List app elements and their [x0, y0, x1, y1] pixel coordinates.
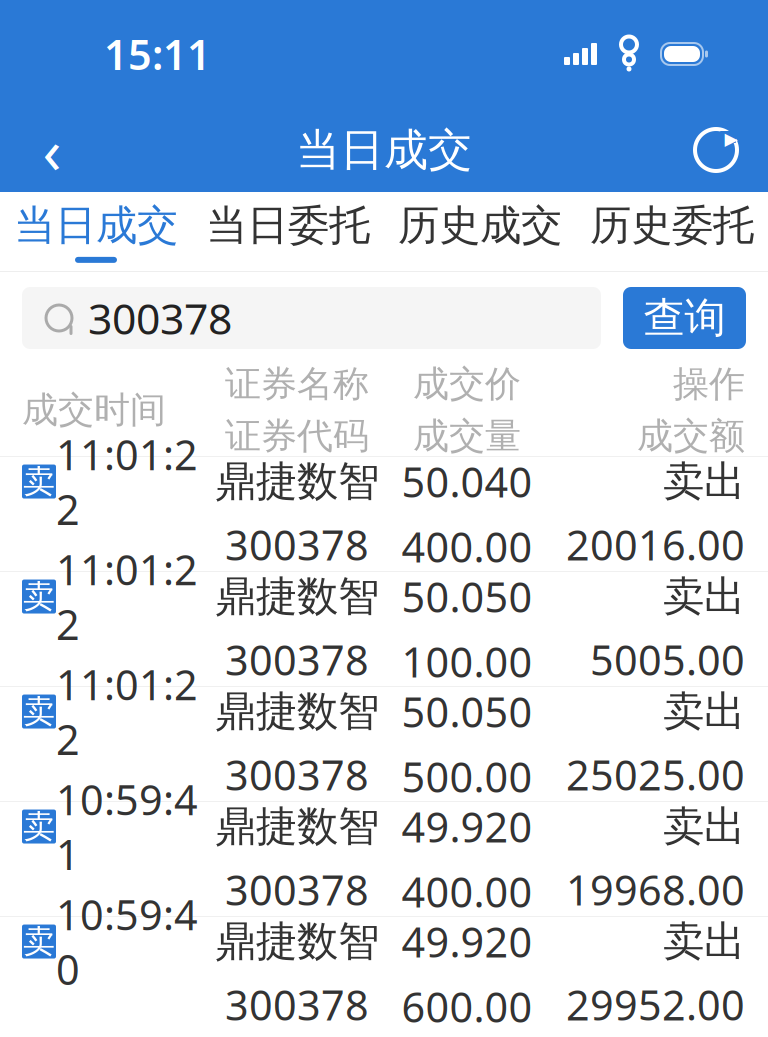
- staticText: 成交价: [413, 362, 521, 406]
- staticText: 鼎捷数智: [215, 571, 379, 622]
- staticText: 300378: [225, 977, 369, 1032]
- staticText: 查询: [643, 293, 725, 343]
- staticText: ‹: [42, 109, 61, 191]
- staticText: [22, 661, 33, 716]
- staticText: 20016.00: [566, 517, 745, 572]
- staticText: 600.00: [401, 979, 532, 1034]
- button[interactable]: 历史委托: [576, 192, 768, 271]
- staticText: 49.920: [401, 914, 532, 969]
- staticText: 5005.00: [590, 632, 745, 687]
- staticText: 400.00: [401, 519, 532, 574]
- staticText: [22, 546, 33, 601]
- staticText: 卖: [23, 692, 55, 731]
- staticText: 50.050: [401, 569, 532, 624]
- staticText: 鼎捷数智: [215, 686, 379, 737]
- staticText: 300378: [225, 747, 369, 802]
- button[interactable]: 卖: [0, 687, 768, 801]
- button[interactable]: 卖: [0, 802, 768, 916]
- staticText: 操作: [673, 362, 745, 406]
- button[interactable]: 卖: [0, 917, 768, 1031]
- staticText: 成交时间: [22, 388, 166, 432]
- button[interactable]: 当日成交: [0, 192, 192, 271]
- staticText: 10:59:41: [56, 772, 198, 881]
- staticText: 10:59:40: [56, 887, 198, 996]
- staticText: 历史成交: [398, 200, 562, 251]
- staticText: 历史委托: [590, 200, 754, 251]
- staticText: 卖出: [663, 916, 745, 967]
- staticText: [22, 891, 33, 946]
- staticText: 400.00: [401, 864, 532, 919]
- button[interactable]: 卖: [0, 457, 768, 571]
- staticText: 25025.00: [566, 747, 745, 802]
- button[interactable]: 查询: [623, 287, 746, 349]
- staticText: 50.040: [401, 454, 532, 509]
- staticText: ▸: [724, 123, 737, 153]
- staticText: 当日委托: [206, 200, 370, 251]
- staticText: 成交量: [413, 414, 521, 458]
- staticText: 11:01:22: [56, 657, 198, 766]
- staticText: 49.920: [401, 799, 532, 854]
- staticText: 50.050: [401, 684, 532, 739]
- staticText: 29952.00: [566, 977, 745, 1032]
- staticText: 300378: [88, 290, 232, 346]
- staticText: 卖出: [663, 686, 745, 737]
- staticText: 当日成交: [14, 200, 178, 251]
- staticText: 卖出: [663, 571, 745, 622]
- staticText: 300378: [225, 862, 369, 917]
- button[interactable]: Refresh: [676, 110, 756, 190]
- staticText: 当日成交: [296, 123, 472, 177]
- staticText: 卖出: [663, 801, 745, 852]
- staticText: 15:11: [104, 27, 211, 81]
- button[interactable]: 历史成交: [384, 192, 576, 271]
- staticText: 鼎捷数智: [215, 801, 379, 852]
- staticText: 100.00: [401, 634, 532, 689]
- button[interactable]: Back: [12, 110, 92, 190]
- staticText: 19968.00: [566, 862, 745, 917]
- button[interactable]: 当日委托: [192, 192, 384, 271]
- staticText: 证券名称: [225, 362, 369, 406]
- staticText: 300378: [225, 517, 369, 572]
- staticText: 11:01:22: [56, 427, 198, 536]
- staticText: 卖: [23, 807, 55, 846]
- staticText: 鼎捷数智: [215, 916, 379, 967]
- staticText: 鼎捷数智: [215, 456, 379, 507]
- staticText: 11:01:22: [56, 542, 198, 651]
- staticText: 500.00: [401, 749, 532, 804]
- staticText: 卖: [23, 577, 55, 616]
- staticText: 卖出: [663, 456, 745, 507]
- staticText: 证券代码: [225, 414, 369, 458]
- staticText: 卖: [23, 462, 55, 501]
- staticText: 卖: [23, 922, 55, 961]
- button[interactable]: 卖: [0, 572, 768, 686]
- staticText: 300378: [225, 632, 369, 687]
- staticText: [22, 776, 33, 831]
- staticText: 成交额: [637, 414, 745, 458]
